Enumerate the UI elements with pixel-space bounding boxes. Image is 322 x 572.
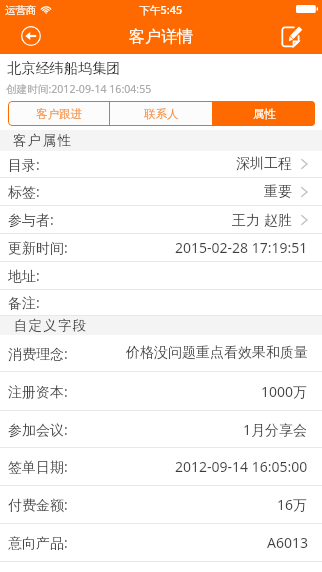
staticText: 下午5:45 — [139, 2, 183, 17]
staticText: 付费金额: — [8, 495, 68, 514]
staticText: 标签: — [8, 182, 40, 201]
button[interactable]: 目录: — [0, 151, 322, 177]
button[interactable]: 参与者: — [0, 206, 322, 233]
staticText: 参加会议: — [8, 420, 68, 439]
button[interactable]: 消费理念: — [0, 335, 322, 371]
staticText: 注册资本: — [8, 382, 68, 401]
staticText: 意向产品: — [8, 533, 68, 552]
staticText: 备注: — [8, 293, 40, 312]
button[interactable]: 联系人 — [110, 101, 212, 126]
staticText: 目录: — [8, 155, 40, 174]
button[interactable]: 标签: — [0, 178, 322, 205]
button[interactable]: 意向产品: — [0, 524, 322, 561]
staticText: 消费理念: — [8, 344, 68, 363]
button[interactable]: 属性 — [213, 101, 315, 126]
button[interactable]: 客户跟进 — [8, 101, 109, 126]
staticText: 1月分享会 — [243, 420, 308, 439]
staticText: 客户属性 — [13, 132, 73, 149]
button[interactable]: 签单日期: — [0, 448, 322, 485]
staticText: 参与者: — [8, 210, 54, 229]
staticText: 1000万 — [261, 382, 308, 401]
staticText: 深圳工程 — [236, 155, 292, 173]
staticText: 价格没问题重点看效果和质量 — [126, 344, 308, 362]
button[interactable]: Back — [21, 26, 41, 46]
staticText: 2015-02-28 17:19:51 — [175, 238, 308, 257]
staticText: 创建时间:2012-09-14 16:04:55 — [6, 82, 152, 96]
staticText: 更新时间: — [8, 238, 68, 257]
staticText: 签单日期: — [8, 457, 68, 476]
button[interactable]: Edit — [281, 25, 303, 47]
button[interactable]: 付费金额: — [0, 486, 322, 523]
staticText: 联系人 — [144, 107, 179, 121]
staticText: 王力 赵胜 — [232, 210, 292, 229]
staticText: 16万 — [277, 495, 308, 514]
button[interactable]: 地址: — [0, 262, 322, 289]
staticText: 重要 — [264, 183, 292, 201]
button[interactable]: 注册资本: — [0, 372, 322, 410]
staticText: 2012-09-14 16:05:00 — [175, 457, 308, 476]
staticText: 北京经纬船坞集团 — [7, 59, 121, 77]
staticText: 自定义字段 — [13, 317, 87, 334]
staticText: 运营商 — [5, 4, 37, 17]
staticText: 属性 — [253, 107, 276, 121]
staticText: 地址: — [8, 266, 40, 285]
staticText: 客户详情 — [129, 27, 193, 47]
button[interactable]: 更新时间: — [0, 234, 322, 261]
button[interactable]: 备注: — [0, 290, 322, 315]
staticText: 客户跟进 — [36, 107, 82, 121]
button[interactable]: 参加会议: — [0, 411, 322, 447]
staticText: A6013 — [267, 533, 308, 552]
